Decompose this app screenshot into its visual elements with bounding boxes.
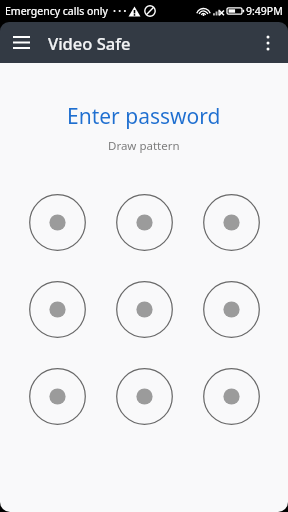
button[interactable]: Open navigation drawer [0,22,42,63]
staticText: Draw pattern [108,138,180,154]
staticText: Video Safe [48,32,131,54]
button[interactable]: Pattern dot 5 [101,266,188,353]
staticText: Emergency calls only [5,4,108,18]
button[interactable]: Pattern dot 1 [14,179,101,266]
button[interactable]: Pattern dot 8 [101,353,188,440]
button[interactable]: Pattern dot 2 [101,179,188,266]
button[interactable]: Pattern dot 3 [188,179,275,266]
staticText: 9:49PM [246,4,283,18]
button[interactable]: Pattern dot 6 [188,266,275,353]
button[interactable]: More options [248,23,288,63]
button[interactable]: Pattern dot 4 [14,266,101,353]
button[interactable]: Pattern dot 9 [188,353,275,440]
staticText: Enter password [67,102,221,131]
button[interactable]: Pattern dot 7 [14,353,101,440]
